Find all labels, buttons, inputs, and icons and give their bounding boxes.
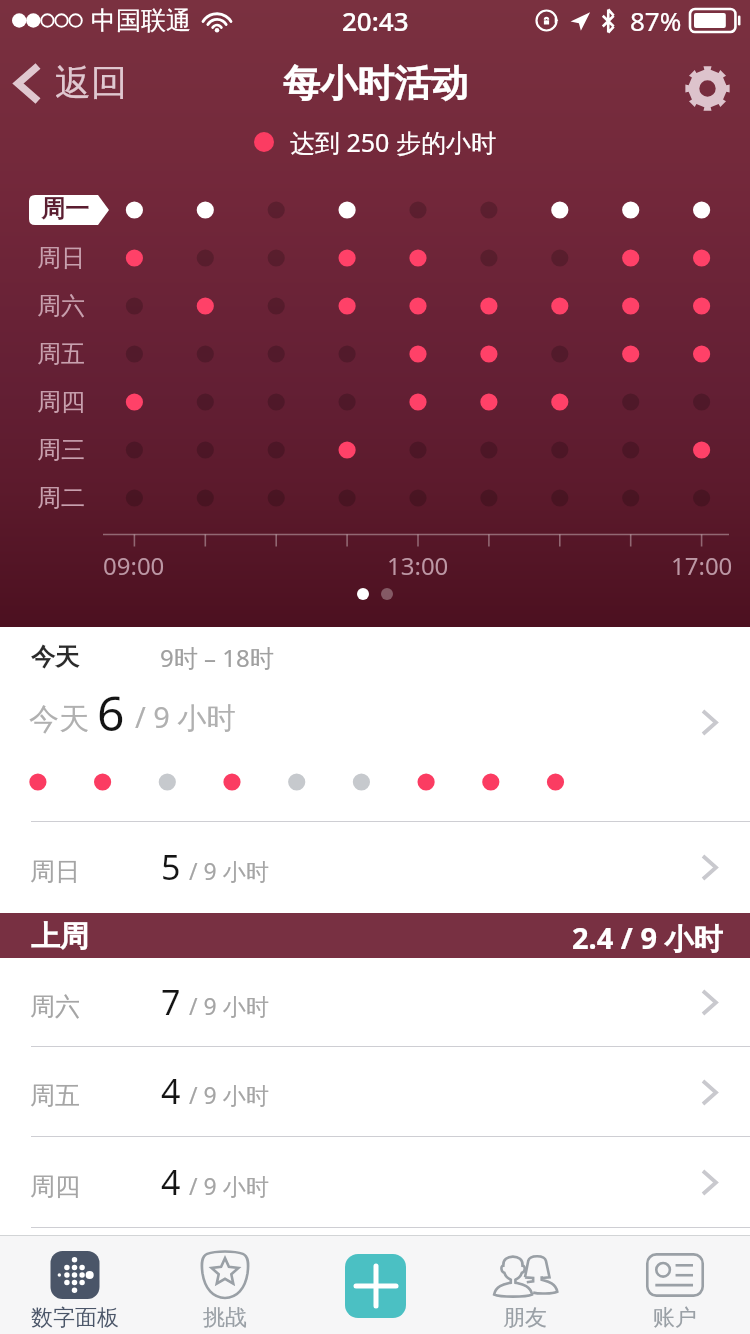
staticText: 周日 — [30, 856, 80, 887]
staticText: 17:00 — [671, 549, 733, 582]
staticText: 周四 — [37, 387, 85, 417]
staticText: 周二 — [37, 483, 85, 513]
staticText: 朋友 — [503, 1304, 547, 1332]
staticText: 4 — [161, 1068, 181, 1114]
staticText: 今天 — [31, 642, 79, 672]
button[interactable]: 返回 — [0, 48, 139, 118]
staticText: 5 — [161, 844, 181, 890]
staticText: 9时 – 18时 — [160, 641, 274, 674]
button[interactable]: 今天 — [0, 686, 750, 822]
button[interactable]: Add — [300, 1236, 450, 1334]
button[interactable]: 周五 — [0, 1047, 750, 1137]
staticText: 2.4 / 9 小时 — [572, 918, 723, 958]
staticText: 周六 — [37, 291, 85, 321]
staticText: / 9 小时 — [189, 990, 269, 1021]
staticText: 今天 — [29, 700, 89, 738]
staticText: 返回 — [55, 60, 127, 105]
button[interactable]: 账户 — [600, 1236, 750, 1334]
button[interactable]: 周日 — [0, 822, 750, 913]
staticText: 达到 250 步的小时 — [290, 125, 496, 159]
staticText: / 9 小时 — [189, 1079, 269, 1110]
staticText: 13:00 — [387, 549, 449, 582]
staticText: 数字面板 — [31, 1304, 119, 1332]
staticText: 中国联通 — [91, 5, 191, 36]
staticText: 挑战 — [203, 1304, 247, 1332]
staticText: 6 — [97, 680, 125, 745]
staticText: 上周 — [31, 918, 89, 955]
staticText: 周日 — [37, 243, 85, 273]
button[interactable]: Settings — [664, 53, 750, 123]
staticText: 09:00 — [103, 549, 165, 582]
button[interactable]: 朋友 — [450, 1236, 600, 1334]
staticText: 周一 — [41, 194, 89, 224]
staticText: 7 — [161, 979, 181, 1025]
button[interactable]: 数字面板 — [0, 1236, 150, 1334]
button[interactable]: 挑战 — [150, 1236, 300, 1334]
staticText: 87% — [630, 3, 682, 38]
staticText: 每小时活动 — [283, 60, 468, 107]
staticText: / 9 小时 — [135, 697, 236, 737]
staticText: 4 — [161, 1159, 181, 1205]
staticText: / 9 小时 — [189, 1170, 269, 1201]
button[interactable]: 周四 — [0, 1137, 750, 1228]
staticText: 周四 — [30, 1171, 80, 1202]
staticText: 账户 — [653, 1304, 697, 1332]
staticText: 周五 — [30, 1080, 80, 1111]
staticText: 周六 — [30, 991, 80, 1022]
button[interactable]: 周六 — [0, 958, 750, 1047]
staticText: 周三 — [37, 435, 85, 465]
staticText: 20:43 — [342, 3, 409, 38]
staticText: / 9 小时 — [189, 855, 269, 886]
staticText: 周五 — [37, 339, 85, 369]
